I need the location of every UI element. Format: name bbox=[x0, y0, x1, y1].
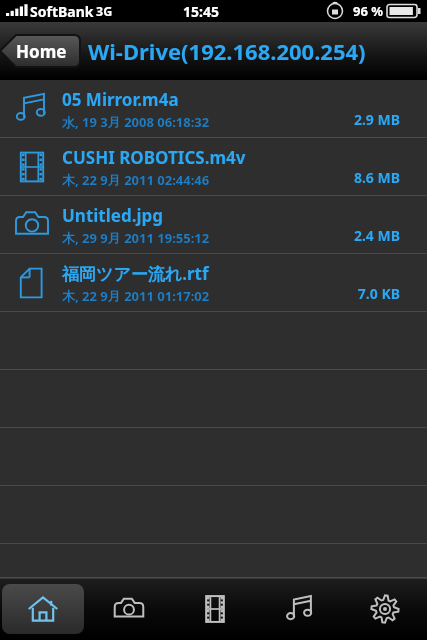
staticText: Home bbox=[16, 40, 67, 63]
staticText: 8.6 MB bbox=[353, 168, 400, 187]
button[interactable]: 福岡ツアー流れ.rtf bbox=[0, 254, 427, 312]
button[interactable]: 05 Mirror.m4a bbox=[0, 80, 427, 138]
button[interactable]: Videos bbox=[172, 578, 257, 640]
button[interactable]: Home bbox=[0, 33, 80, 69]
staticText: Wi-Drive(192.168.200.254) bbox=[88, 36, 366, 66]
button[interactable]: Photos bbox=[86, 578, 172, 640]
staticText: 2.9 MB bbox=[353, 110, 400, 129]
staticText: 木, 29 9月 2011 19:55:12 bbox=[62, 229, 210, 247]
staticText: 3G bbox=[96, 3, 113, 20]
staticText: 木, 22 9月 2011 02:44:46 bbox=[62, 171, 210, 189]
staticText: 水, 19 3月 2008 06:18:32 bbox=[62, 113, 210, 131]
staticText: 05 Mirror.m4a bbox=[62, 88, 179, 111]
button[interactable]: Music bbox=[257, 578, 342, 640]
button[interactable]: Untitled.jpg bbox=[0, 196, 427, 254]
staticText: 15:45 bbox=[183, 2, 219, 21]
staticText: CUSHI ROBOTICS.m4v bbox=[62, 146, 246, 169]
button[interactable]: CUSHI ROBOTICS.m4v bbox=[0, 138, 427, 196]
staticText: Untitled.jpg bbox=[62, 204, 164, 227]
staticText: 7.0 KB bbox=[357, 284, 400, 303]
staticText: 木, 22 9月 2011 01:17:02 bbox=[62, 287, 210, 305]
staticText: 2.4 MB bbox=[353, 226, 400, 245]
staticText: SoftBank bbox=[30, 2, 94, 21]
staticText: 福岡ツアー流れ.rtf bbox=[62, 262, 209, 285]
staticText: 96 % bbox=[353, 2, 383, 20]
button[interactable]: Settings bbox=[342, 578, 427, 640]
button[interactable]: Home bbox=[0, 578, 86, 640]
